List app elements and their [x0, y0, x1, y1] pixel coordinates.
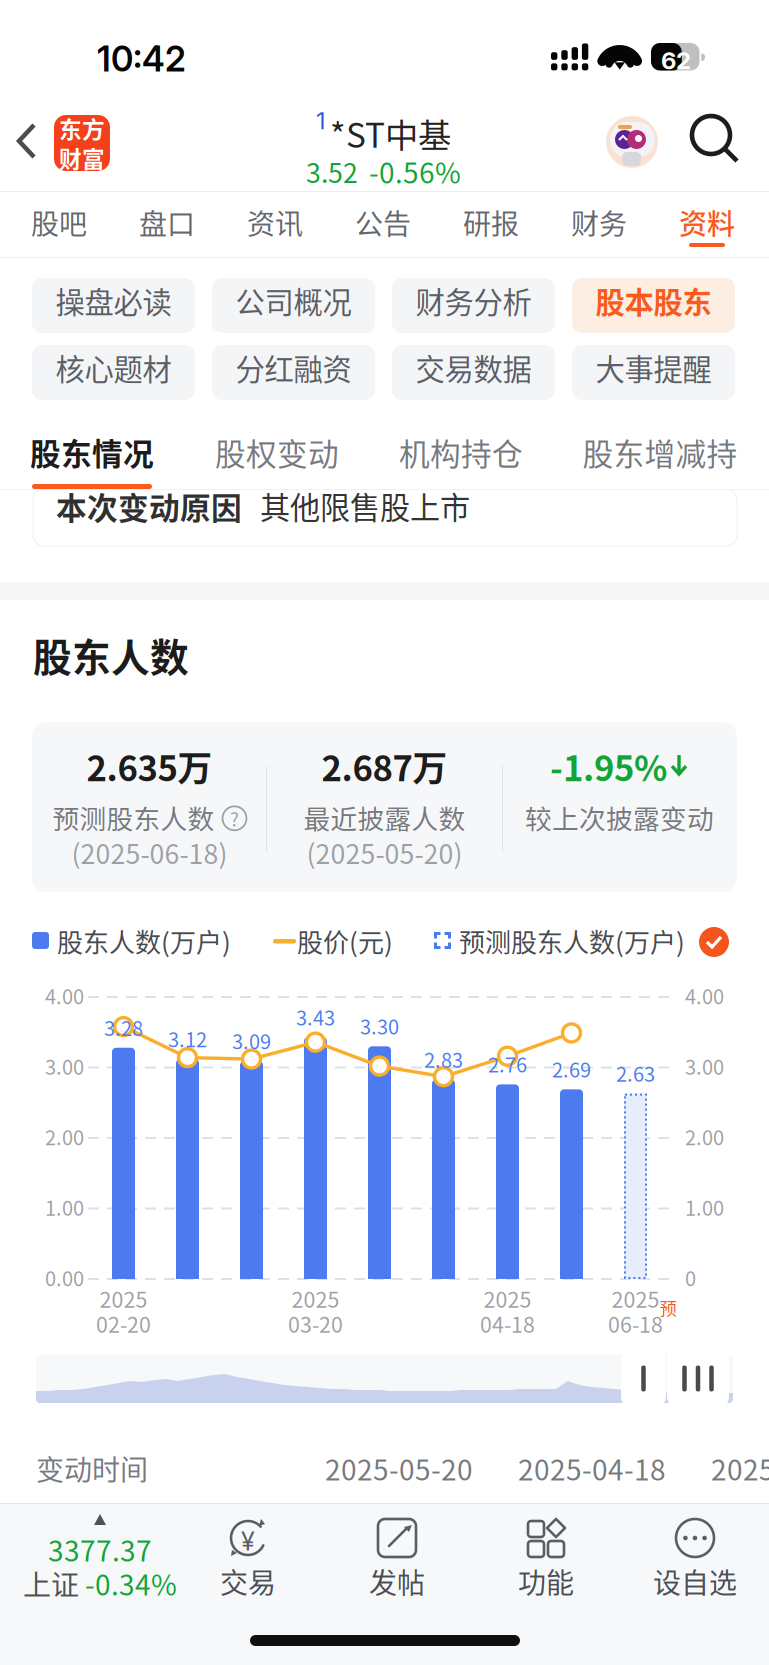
button[interactable]: 交易数据	[392, 345, 555, 400]
staticText: 2025-05-20	[325, 1448, 473, 1488]
staticText: 大事提醒	[595, 346, 711, 389]
button[interactable]: ¥	[186, 1505, 310, 1609]
button[interactable]: 发帖	[335, 1505, 459, 1609]
button[interactable]: Multi column view	[667, 1350, 729, 1407]
button[interactable]: 分红融资	[212, 345, 375, 400]
staticText: 02-20	[96, 1308, 151, 1339]
staticText: 10:42	[97, 38, 186, 80]
staticText: 2025	[483, 1283, 531, 1314]
button[interactable]: 股权变动	[184, 412, 370, 489]
staticText: 4.00	[685, 981, 724, 1010]
staticText: 设自选	[653, 1561, 737, 1601]
button[interactable]: 3377.37	[0, 1505, 200, 1609]
staticText: 盘口	[139, 202, 195, 242]
staticText: 交易数据	[415, 346, 531, 389]
staticText: 0	[685, 1263, 696, 1292]
button[interactable]: Search	[692, 116, 744, 168]
staticText: 最近披露人数	[303, 798, 465, 837]
staticText: 2.00	[45, 1122, 84, 1151]
staticText: 资料	[679, 202, 735, 242]
staticText: 2.83	[424, 1044, 463, 1073]
staticText: 2.00	[685, 1122, 724, 1151]
staticText: 3.52	[306, 152, 358, 191]
staticText: 2.635万	[86, 741, 212, 791]
staticText: 3.09	[232, 1026, 271, 1055]
staticText: 交易	[220, 1561, 276, 1601]
button[interactable]: 财务分析	[392, 278, 555, 333]
button[interactable]: 机构持仓	[368, 412, 554, 489]
button[interactable]: 股本股东	[572, 278, 735, 333]
staticText: (2025-05-20)	[306, 833, 462, 872]
staticText: 1.00	[685, 1192, 724, 1221]
button[interactable]: Single column view	[621, 1350, 666, 1407]
staticText: 股权变动	[215, 430, 339, 474]
staticText: 3.00	[685, 1051, 724, 1080]
staticText: 股东人数	[33, 627, 189, 683]
staticText: 核心题材	[55, 346, 171, 389]
button[interactable]: 研报	[437, 192, 545, 258]
button[interactable]: AI assistant	[604, 114, 660, 172]
button[interactable]: 核心题材	[32, 345, 195, 400]
staticText: -0.34%	[85, 1563, 177, 1603]
button[interactable]: 资料	[653, 192, 761, 258]
staticText: 04-18	[480, 1308, 535, 1339]
staticText: 变动时间	[36, 1448, 148, 1488]
button[interactable]: 盘口	[113, 192, 221, 258]
staticText: *ST中基	[330, 109, 451, 157]
button[interactable]: 设自选	[633, 1505, 757, 1609]
staticText: 分红融资	[235, 346, 351, 389]
button[interactable]: East Money home	[54, 115, 110, 171]
staticText: 1.00	[45, 1192, 84, 1221]
staticText: 62	[661, 46, 691, 75]
staticText: 3377.37	[48, 1529, 152, 1569]
staticText: -1.95%	[550, 741, 667, 791]
staticText: 03-20	[288, 1308, 343, 1339]
staticText: 3.30	[360, 1011, 399, 1040]
staticText: 2.76	[488, 1049, 527, 1078]
staticText: 股吧	[31, 202, 87, 242]
button[interactable]: 公司概况	[212, 278, 375, 333]
staticText: 股本股东	[595, 279, 711, 322]
staticText: 功能	[518, 1561, 574, 1601]
staticText: 2025	[291, 1283, 339, 1314]
staticText: 发帖	[369, 1561, 425, 1601]
button[interactable]: 大事提醒	[572, 345, 735, 400]
staticText: 股价(元)	[297, 922, 393, 960]
staticText: 2.63	[616, 1059, 655, 1088]
staticText: (2025-06-18)	[71, 833, 227, 872]
button[interactable]: 操盘必读	[32, 278, 195, 333]
staticText: 资讯	[247, 202, 303, 242]
staticText: 东方	[59, 112, 105, 144]
staticText: 2.69	[552, 1054, 591, 1083]
staticText: 其他限售股上市	[260, 484, 470, 528]
staticText: 财务	[571, 202, 627, 242]
staticText: 股东增减持	[582, 430, 737, 474]
button[interactable]: Back	[6, 113, 54, 173]
button[interactable]: 财务	[545, 192, 653, 258]
staticText: 较上次披露变动	[525, 798, 714, 837]
staticText: ?	[230, 805, 239, 832]
button[interactable]: 股吧	[5, 192, 113, 258]
staticText: 预测股东人数	[52, 798, 214, 837]
staticText: 2025-	[711, 1448, 769, 1488]
staticText: 公司概况	[235, 279, 351, 322]
staticText: 财务分析	[415, 279, 531, 322]
staticText: 本次变动原因	[56, 484, 242, 528]
staticText: 2025	[99, 1283, 147, 1314]
button[interactable]: 功能	[484, 1505, 608, 1609]
staticText: 3.00	[45, 1051, 84, 1080]
staticText: 3.12	[168, 1024, 207, 1053]
staticText: 股东情况	[30, 430, 154, 474]
button[interactable]: 资讯	[221, 192, 329, 258]
staticText: ¥	[241, 1526, 255, 1557]
staticText: 公告	[355, 202, 411, 242]
staticText: 3.28	[104, 1013, 143, 1042]
staticText: -0.56%	[369, 151, 461, 191]
button[interactable]: 股东情况	[0, 412, 185, 489]
button[interactable]: 公告	[329, 192, 437, 258]
staticText: 2.687万	[321, 741, 447, 791]
staticText: 预	[659, 1295, 676, 1320]
staticText: 0.00	[45, 1263, 84, 1292]
button[interactable]: 股东增减持	[567, 412, 753, 489]
staticText: 2025-04-18	[518, 1448, 666, 1488]
